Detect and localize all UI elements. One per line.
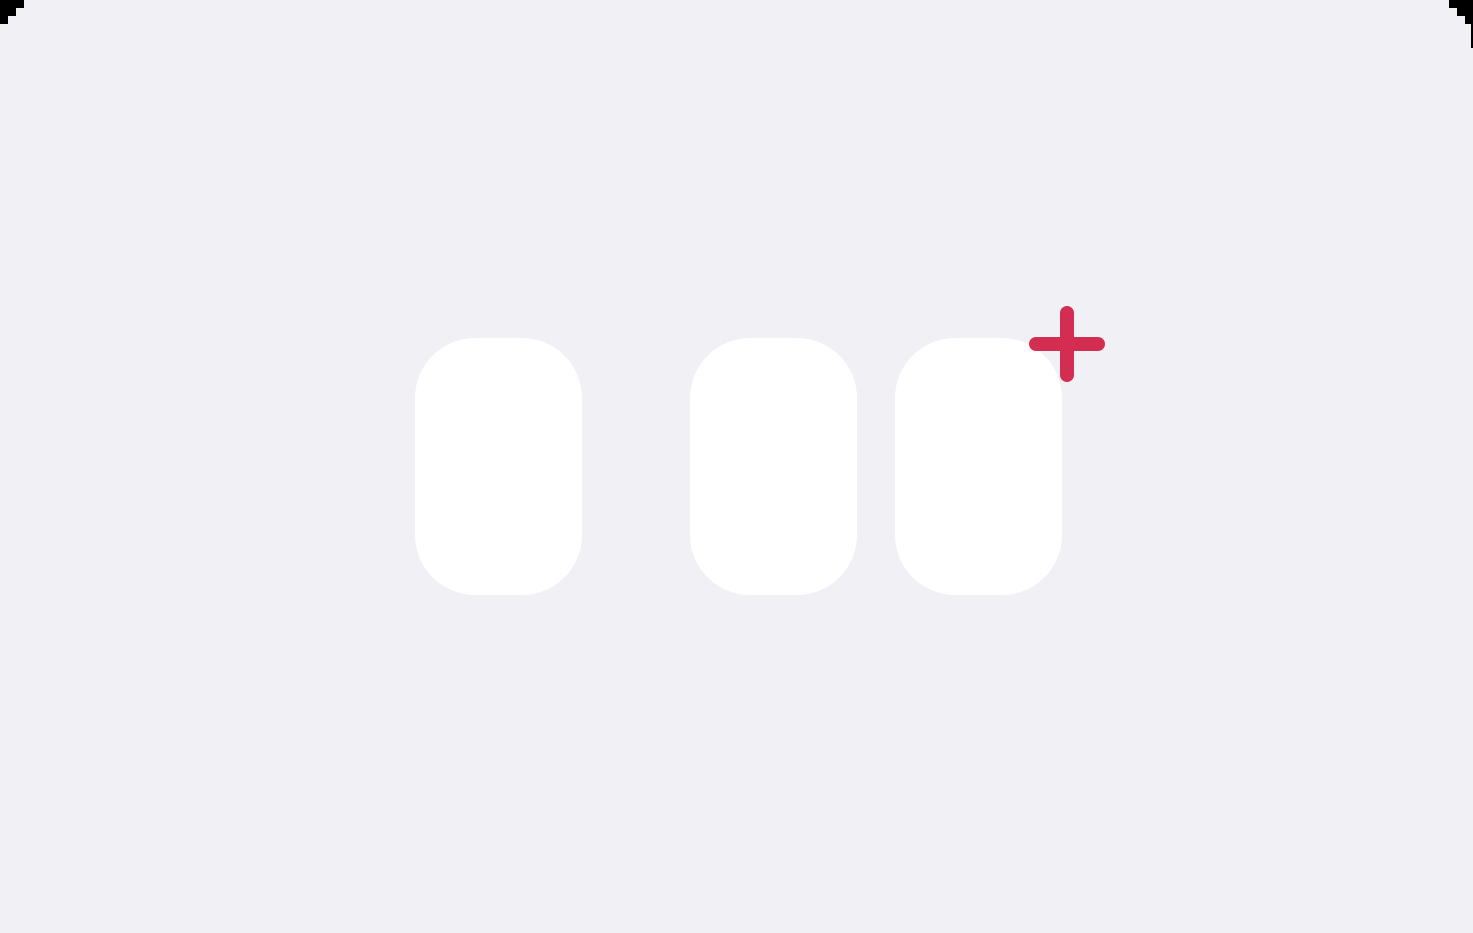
button[interactable]: Add card [1029, 306, 1105, 382]
button[interactable]: Card [690, 338, 857, 595]
button[interactable]: Card [895, 338, 1062, 595]
button[interactable]: Card [415, 338, 582, 595]
